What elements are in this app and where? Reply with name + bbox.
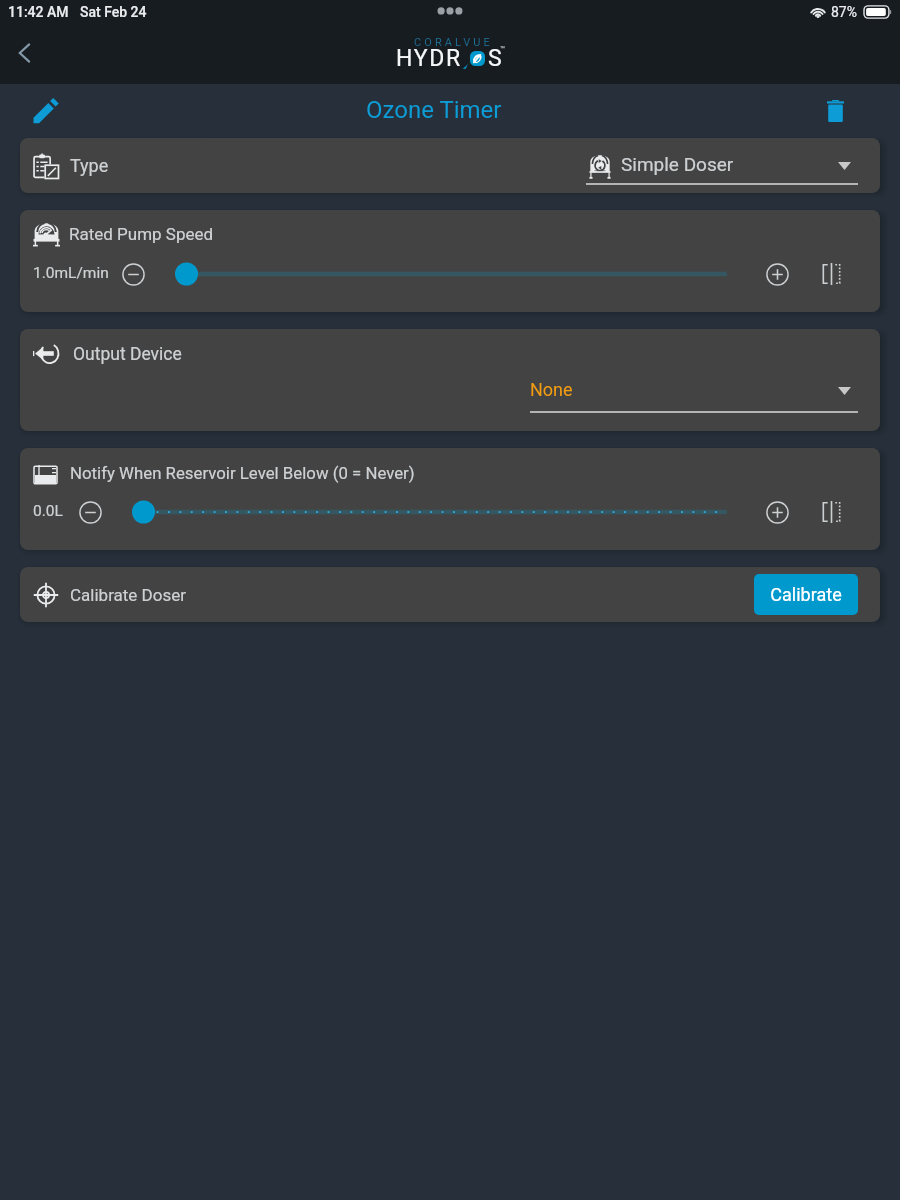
staticText: ™: [500, 45, 506, 54]
button[interactable]: Type: [20, 138, 880, 193]
staticText: 0.0L: [33, 502, 63, 520]
button[interactable]: Decrease: [119, 260, 147, 288]
staticText: Notify When Reservoir Level Below (0 = N…: [70, 463, 415, 483]
button[interactable]: Calibrate: [754, 574, 858, 615]
staticText: Type: [70, 155, 109, 176]
staticText: 87%: [831, 4, 857, 20]
button[interactable]: Increase: [763, 260, 791, 288]
staticText: CORALVUE: [414, 36, 493, 49]
button[interactable]: None: [530, 379, 860, 417]
staticText: Sat Feb 24: [80, 4, 147, 20]
button[interactable]: Delete: [818, 94, 852, 128]
button[interactable]: Decrease: [76, 498, 104, 526]
button[interactable]: Edit: [29, 94, 63, 128]
staticText: Ozone Timer: [366, 96, 502, 124]
staticText: None: [530, 379, 573, 400]
button[interactable]: Back: [6, 34, 44, 72]
staticText: Rated Pump Speed: [69, 224, 214, 244]
staticText: Output Device: [73, 344, 182, 365]
staticText: HYDR: [396, 45, 462, 72]
staticText: Calibrate: [770, 584, 842, 605]
button[interactable]: Enter value: [817, 260, 845, 288]
staticText: 1.0mL/min: [33, 264, 109, 282]
button[interactable]: Enter value: [817, 498, 845, 526]
button[interactable]: Increase: [763, 498, 791, 526]
staticText: Simple Doser: [621, 153, 734, 175]
staticText: S: [488, 45, 503, 72]
staticText: Calibrate Doser: [70, 585, 186, 605]
staticText: 11:42 AM: [8, 4, 69, 20]
